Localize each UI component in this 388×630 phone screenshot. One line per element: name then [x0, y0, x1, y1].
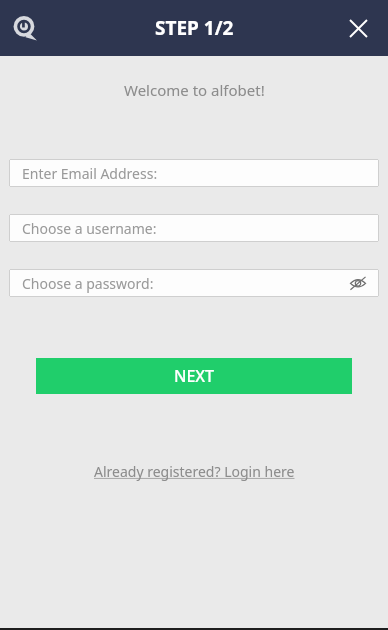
button[interactable]: Already registered? Login here — [88, 458, 301, 485]
button[interactable]: Choose a username: — [9, 214, 379, 242]
staticText: Choose a password: — [22, 274, 154, 293]
button[interactable]: Close — [338, 8, 378, 48]
button[interactable]: Enter Email Address: — [9, 159, 379, 187]
button[interactable]: Choose a password: — [9, 269, 379, 297]
button[interactable]: App logo — [11, 14, 39, 42]
staticText: Welcome to alfobet! — [124, 80, 265, 100]
staticText: Already registered? Login here — [94, 462, 295, 481]
staticText: Choose a username: — [22, 219, 157, 238]
staticText: NEXT — [174, 365, 215, 387]
button[interactable]: Show password — [347, 272, 369, 294]
staticText: STEP 1/2 — [155, 15, 234, 41]
staticText: Enter Email Address: — [22, 164, 158, 183]
button[interactable]: NEXT — [36, 358, 352, 394]
